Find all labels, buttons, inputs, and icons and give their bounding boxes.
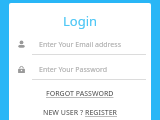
staticText: Enter Your Email address: [39, 40, 122, 50]
button[interactable]: FORGOT PASSWORD: [9, 87, 151, 101]
button[interactable]: Password: [9, 64, 151, 80]
staticText: Enter Your Password: [39, 65, 107, 75]
staticText: Login: [9, 12, 151, 30]
staticText: REGISTER: [85, 108, 117, 118]
button[interactable]: Account: [9, 39, 151, 55]
other: Account: [16, 39, 27, 50]
button[interactable]: REGISTER: [85, 108, 117, 118]
staticText: NEW USER ?: [43, 108, 85, 118]
other: Password: [16, 64, 27, 75]
staticText: FORGOT PASSWORD: [46, 89, 114, 99]
